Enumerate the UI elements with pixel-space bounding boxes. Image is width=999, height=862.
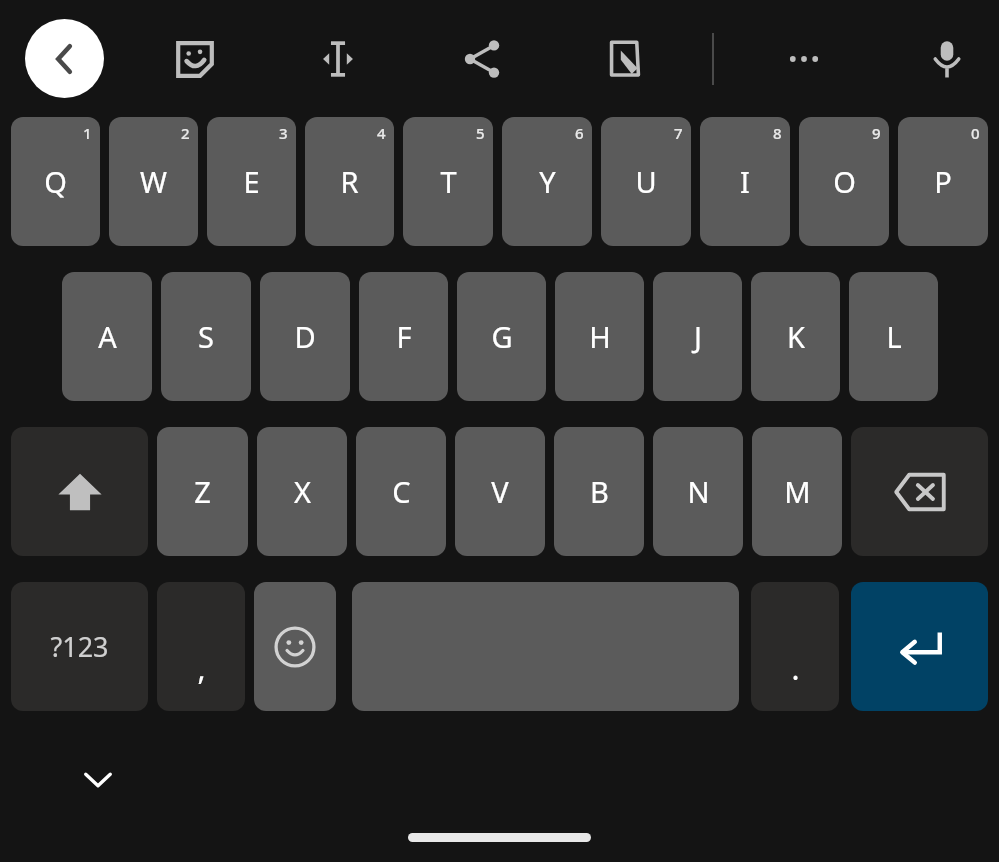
button[interactable]: Back — [25, 19, 104, 98]
staticText: 1 — [83, 123, 92, 143]
button[interactable]: Voice input — [910, 22, 984, 96]
button[interactable]: N — [653, 427, 743, 556]
staticText: O — [833, 162, 856, 201]
button[interactable]: Space — [352, 582, 739, 711]
staticText: H — [589, 317, 611, 356]
staticText: N — [687, 472, 710, 511]
staticText: L — [886, 317, 902, 356]
staticText: D — [294, 317, 316, 356]
button[interactable]: Handwriting — [588, 22, 662, 96]
staticText: . — [791, 648, 800, 689]
staticText: 9 — [872, 123, 881, 143]
button[interactable]: Stickers — [158, 22, 232, 96]
button[interactable]: C — [356, 427, 446, 556]
staticText: ?123 — [50, 628, 109, 665]
button[interactable]: Shift — [11, 427, 148, 556]
staticText: Z — [194, 472, 211, 511]
button[interactable]: L — [849, 272, 938, 401]
staticText: 2 — [181, 123, 190, 143]
staticText: 0 — [971, 123, 980, 143]
button[interactable]: J — [653, 272, 742, 401]
staticText: V — [491, 472, 509, 511]
staticText: G — [491, 317, 513, 356]
button[interactable]: X — [257, 427, 347, 556]
button[interactable]: V — [455, 427, 545, 556]
button[interactable]: M — [752, 427, 842, 556]
button[interactable]: More options — [767, 22, 841, 96]
button[interactable]: Y — [502, 117, 592, 246]
staticText: R — [340, 162, 359, 201]
button[interactable]: U — [601, 117, 691, 246]
staticText: P — [934, 162, 952, 201]
button[interactable]: Emoji — [254, 582, 336, 711]
button[interactable]: Share — [445, 22, 519, 96]
staticText: B — [590, 472, 609, 511]
button[interactable]: Backspace — [851, 427, 988, 556]
button[interactable]: . — [751, 582, 839, 711]
staticText: W — [140, 162, 167, 201]
button[interactable]: Q — [11, 117, 100, 246]
button[interactable]: P — [898, 117, 988, 246]
button[interactable]: G — [457, 272, 546, 401]
button[interactable]: Text editing — [301, 22, 375, 96]
staticText: K — [787, 317, 805, 356]
button[interactable]: W — [109, 117, 198, 246]
staticText: T — [440, 162, 457, 201]
button[interactable]: R — [305, 117, 394, 246]
button[interactable]: , — [157, 582, 245, 711]
button[interactable]: Hide keyboard — [62, 743, 134, 815]
staticText: A — [98, 317, 117, 356]
staticText: 8 — [773, 123, 782, 143]
button[interactable]: F — [359, 272, 448, 401]
staticText: X — [294, 472, 311, 511]
staticText: I — [740, 162, 750, 201]
staticText: E — [243, 162, 260, 201]
button[interactable]: D — [260, 272, 350, 401]
staticText: 3 — [279, 123, 288, 143]
button[interactable]: K — [751, 272, 840, 401]
staticText: J — [694, 317, 702, 356]
staticText: , — [197, 648, 206, 689]
button[interactable]: A — [62, 272, 152, 401]
staticText: U — [635, 162, 657, 201]
button[interactable]: E — [207, 117, 296, 246]
button[interactable]: S — [161, 272, 251, 401]
staticText: Y — [539, 162, 556, 201]
button[interactable]: ?123 — [11, 582, 148, 711]
staticText: Q — [44, 162, 67, 201]
button[interactable]: Enter — [851, 582, 988, 711]
staticText: 5 — [476, 123, 485, 143]
button[interactable]: B — [554, 427, 644, 556]
button[interactable]: O — [799, 117, 889, 246]
button[interactable]: T — [403, 117, 493, 246]
staticText: 6 — [575, 123, 584, 143]
staticText: 7 — [674, 123, 683, 143]
staticText: M — [784, 472, 811, 511]
button[interactable]: Z — [157, 427, 248, 556]
button[interactable]: H — [555, 272, 644, 401]
staticText: C — [392, 472, 411, 511]
button[interactable]: I — [700, 117, 790, 246]
staticText: S — [198, 317, 214, 356]
staticText: F — [396, 317, 412, 356]
staticText: 4 — [377, 123, 386, 143]
